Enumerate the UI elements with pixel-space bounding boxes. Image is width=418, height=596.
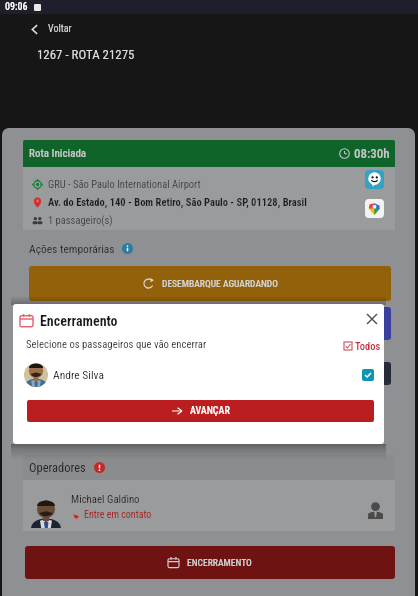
button[interactable] xyxy=(29,307,391,340)
button[interactable]: AVANÇAR xyxy=(27,400,374,422)
staticText: 1267 - ROTA 21275 xyxy=(37,47,135,62)
button[interactable]: Andre Silva xyxy=(24,360,374,389)
staticText: Entre em contato xyxy=(84,509,152,521)
staticText: 08:30h xyxy=(354,146,390,161)
staticText: Voltar xyxy=(48,23,72,35)
button[interactable]: DESEMBARQUE AGUARDANDO xyxy=(29,266,391,301)
staticText: Av. do Estado, 140 - Bom Retiro, São Pau… xyxy=(48,196,307,208)
staticText: Encerramento xyxy=(40,313,118,329)
button[interactable]: Abrir no Waze xyxy=(365,170,384,189)
staticText: Andre Silva xyxy=(53,368,104,381)
button[interactable]: Voltar xyxy=(26,18,75,40)
staticText: 09:06 xyxy=(5,1,28,13)
staticText: 1 passageiro(s) xyxy=(48,214,113,226)
staticText: Rota Iniciada xyxy=(29,147,87,160)
other: Detalhes do operador xyxy=(367,502,384,519)
staticText: Ações temporárias xyxy=(29,242,115,255)
button[interactable]: Fechar xyxy=(362,309,382,329)
staticText: AVANÇAR xyxy=(190,405,230,417)
button[interactable]: Michael Galdino xyxy=(23,480,395,531)
staticText: Michael Galdino xyxy=(71,493,140,506)
staticText: Operadores xyxy=(29,460,86,475)
button[interactable]: Abrir no Google Maps xyxy=(365,199,384,218)
button[interactable]: Todos xyxy=(342,338,383,354)
staticText: Todos xyxy=(355,340,381,352)
staticText: ENCERRAMENTO xyxy=(187,557,252,568)
button[interactable] xyxy=(29,362,391,385)
staticText: GRU - São Paulo International Airport xyxy=(48,178,201,190)
button[interactable]: ENCERRAMENTO xyxy=(25,546,395,579)
staticText: DESEMBARQUE AGUARDANDO xyxy=(162,278,278,289)
staticText: Selecione os passageiros que vão encerra… xyxy=(26,338,207,351)
